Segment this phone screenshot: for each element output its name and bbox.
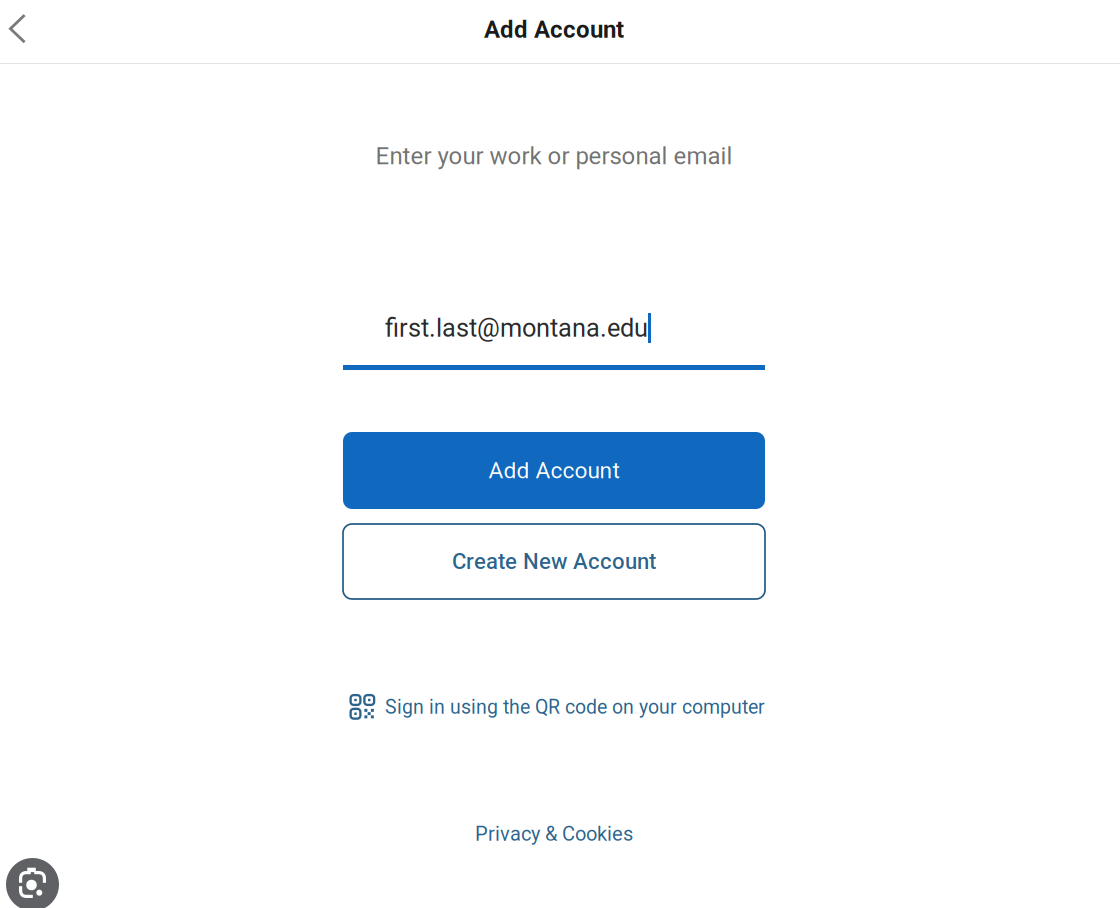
button[interactable]: Sign in using the QR code on your comput…	[343, 690, 765, 724]
button[interactable]: Create New Account	[343, 524, 765, 599]
staticText: Create New Account	[452, 548, 656, 574]
staticText: Add Account	[488, 457, 619, 484]
staticText: first.last@montana.edu	[385, 313, 648, 343]
button[interactable]: Privacy & Cookies	[343, 819, 765, 849]
button[interactable]: Add Account	[343, 432, 765, 509]
staticText: Privacy & Cookies	[475, 822, 633, 846]
button[interactable]: Back	[0, 0, 48, 63]
button[interactable]: Search with Lens	[6, 858, 59, 908]
staticText: Add Account	[484, 15, 624, 43]
staticText: Sign in using the QR code on your comput…	[385, 696, 765, 718]
staticText: Enter your work or personal email	[375, 142, 732, 170]
